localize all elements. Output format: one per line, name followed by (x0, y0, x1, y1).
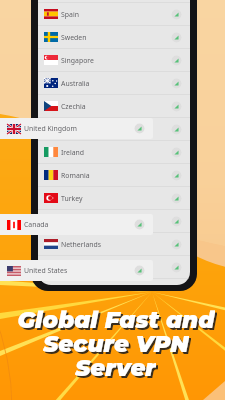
button[interactable]: Germany (38, 118, 190, 140)
other: Signal strength (171, 147, 182, 158)
button[interactable]: United Kingdom (0, 118, 153, 139)
other: Signal strength (171, 124, 182, 135)
button[interactable]: Sweden (38, 26, 190, 48)
staticText: Spain (61, 10, 79, 19)
other: Signal strength (171, 55, 182, 66)
staticText: Turkey (61, 194, 83, 203)
button[interactable]: Australia (38, 72, 190, 94)
staticText: Secure VPN (43, 330, 189, 354)
staticText: Netherlands (61, 240, 102, 249)
staticText: Ireland (61, 148, 85, 157)
button[interactable]: United States (0, 260, 153, 281)
button[interactable]: Turkey (38, 187, 190, 209)
other: Signal strength (134, 123, 145, 134)
staticText: Canada (24, 220, 49, 229)
staticText: Global Fast and (19, 308, 217, 332)
staticText: Server (77, 356, 158, 380)
other: Signal strength (171, 78, 182, 89)
staticText: United Kingdom (24, 124, 77, 133)
staticText: Romania (61, 171, 90, 180)
staticText: Czechia (61, 102, 86, 111)
button[interactable]: Canada (0, 214, 153, 235)
staticText: Italy (61, 263, 75, 272)
button[interactable]: Czechia (38, 95, 190, 117)
button[interactable]: Singapore (38, 49, 190, 71)
staticText: Server (75, 354, 156, 378)
button[interactable]: France (38, 210, 190, 232)
other: Signal strength (134, 219, 145, 230)
other: Signal strength (171, 170, 182, 181)
button[interactable]: Ireland (38, 141, 190, 163)
button[interactable]: Netherlands (38, 233, 190, 255)
button[interactable]: Romania (38, 164, 190, 186)
other: Signal strength (171, 9, 182, 20)
other: Signal strength (171, 193, 182, 204)
other: Signal strength (171, 101, 182, 112)
staticText: Australia (61, 79, 90, 88)
other: Signal strength (171, 216, 182, 227)
staticText: United States (24, 266, 68, 275)
button[interactable]: Norway (38, 279, 190, 285)
other: Signal strength (134, 265, 145, 276)
staticText: Global Fast and (17, 306, 215, 330)
other: Signal strength (171, 32, 182, 43)
button[interactable]: Spain (38, 3, 190, 25)
staticText: Sweden (61, 33, 87, 42)
other: Signal strength (171, 239, 182, 250)
button[interactable]: Italy (38, 256, 190, 278)
staticText: Secure VPN (45, 332, 191, 356)
other: Signal strength (171, 262, 182, 273)
staticText: Singapore (61, 56, 94, 65)
staticText: Germany (61, 125, 91, 134)
